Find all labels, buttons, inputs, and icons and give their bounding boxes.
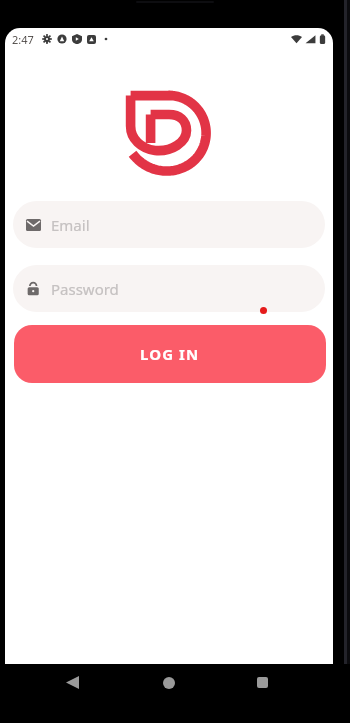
button[interactable]: Home: [143, 670, 195, 695]
staticText: Password: [51, 279, 119, 299]
button[interactable]: Password: [13, 265, 325, 312]
button[interactable]: Back: [46, 670, 98, 695]
button[interactable]: Recents: [236, 670, 288, 695]
staticText: Email: [51, 215, 90, 235]
staticText: 2:47: [12, 32, 34, 47]
button[interactable]: Email: [13, 201, 325, 248]
staticText: LOG IN: [140, 344, 200, 364]
button[interactable]: LOG IN: [14, 325, 326, 383]
